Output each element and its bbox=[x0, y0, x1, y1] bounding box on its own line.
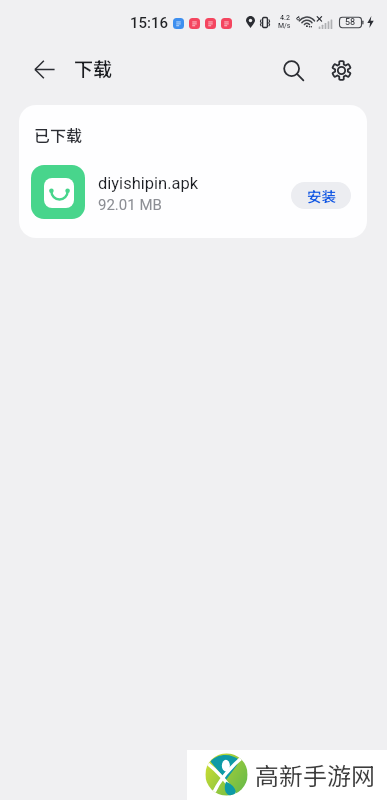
staticText: 92.01 MB bbox=[98, 196, 162, 214]
staticText: 15:16 bbox=[130, 14, 169, 32]
staticText: 安装 bbox=[307, 185, 336, 206]
button[interactable]: Settings bbox=[319, 48, 363, 92]
button[interactable]: Back bbox=[21, 46, 67, 92]
button[interactable]: Search bbox=[271, 48, 315, 92]
staticText: 高新手游网 bbox=[255, 757, 375, 792]
staticText: diyishipin.apk bbox=[98, 174, 199, 193]
button[interactable]: diyishipin.apk bbox=[19, 159, 367, 225]
staticText: 下载 bbox=[74, 54, 113, 82]
staticText: 已下载 bbox=[34, 123, 83, 146]
staticText: 4.2 bbox=[280, 14, 290, 22]
staticText: M/s bbox=[278, 22, 291, 30]
staticText: 58 bbox=[345, 17, 356, 28]
button[interactable]: 安装 bbox=[291, 182, 351, 209]
